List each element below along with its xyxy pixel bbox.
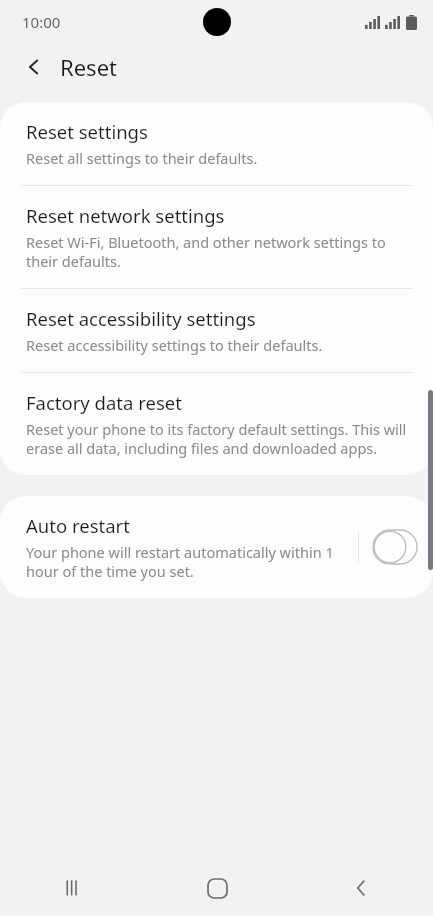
- staticText: Your phone will restart automatically wi…: [26, 542, 348, 581]
- button[interactable]: Reset settings: [0, 102, 433, 185]
- staticText: Reset all settings to their defaults.: [26, 148, 258, 168]
- staticText: Reset settings: [26, 119, 148, 144]
- button[interactable]: Recents: [0, 860, 145, 916]
- staticText: Reset your phone to its factory default …: [26, 419, 407, 458]
- staticText: Reset: [60, 52, 117, 82]
- button[interactable]: Auto restart toggle: [373, 530, 417, 564]
- staticText: Reset network settings: [26, 203, 225, 228]
- staticText: Auto restart: [26, 513, 130, 538]
- button[interactable]: Reset accessibility settings: [0, 289, 433, 372]
- button[interactable]: Back: [289, 860, 433, 916]
- button[interactable]: Reset network settings: [0, 186, 433, 288]
- staticText: Factory data reset: [26, 390, 182, 415]
- button[interactable]: Factory data reset: [0, 373, 433, 475]
- button[interactable]: Back: [14, 47, 54, 87]
- staticText: Reset accessibility settings: [26, 306, 256, 331]
- button[interactable]: Home: [145, 860, 289, 916]
- button[interactable]: Auto restart: [0, 496, 433, 598]
- staticText: Reset accessibility settings to their de…: [26, 335, 323, 355]
- staticText: 10:00: [22, 12, 61, 32]
- staticText: Reset Wi-Fi, Bluetooth, and other networ…: [26, 232, 407, 271]
